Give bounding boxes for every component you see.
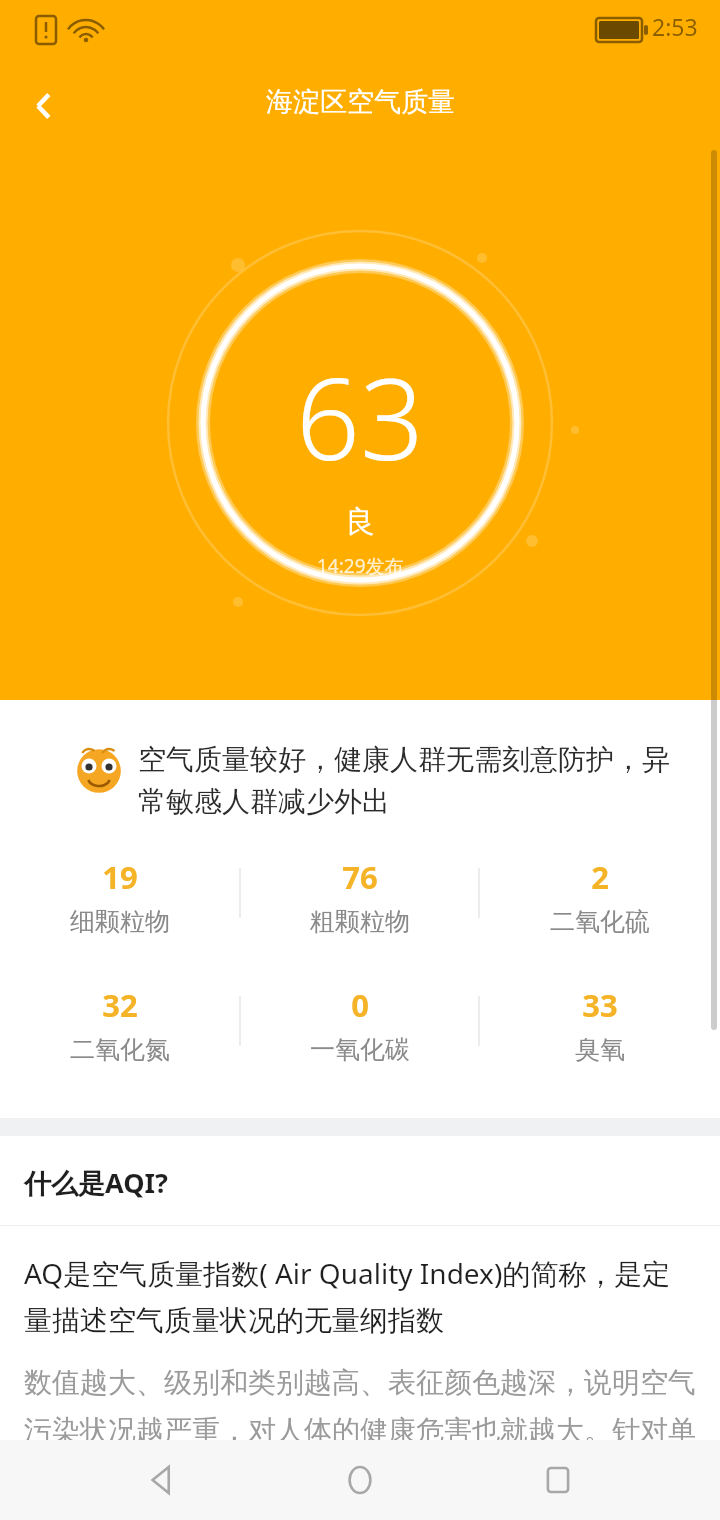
staticText: 2 bbox=[591, 856, 609, 898]
button[interactable]: Back bbox=[14, 76, 74, 136]
button[interactable]: 19 bbox=[0, 856, 240, 956]
staticText: 32 bbox=[102, 984, 138, 1026]
staticText: 臭氧 bbox=[575, 1034, 625, 1065]
staticText: 19 bbox=[102, 856, 138, 898]
button[interactable]: 32 bbox=[0, 984, 240, 1084]
staticText: 0 bbox=[351, 984, 369, 1026]
staticText: 粗颗粒物 bbox=[310, 906, 410, 937]
staticText: 海淀区空气质量 bbox=[266, 85, 455, 119]
button[interactable]: 2 bbox=[480, 856, 720, 956]
staticText: 63 bbox=[296, 340, 424, 493]
staticText: 76 bbox=[342, 856, 378, 898]
staticText: 33 bbox=[582, 984, 618, 1026]
staticText: AQ是空气质量指数( Air Quality Index)的简称，是定量描述空气… bbox=[24, 1254, 696, 1339]
button[interactable]: Recent apps bbox=[523, 1445, 593, 1515]
staticText: 细颗粒物 bbox=[70, 906, 170, 937]
button[interactable]: 33 bbox=[480, 984, 720, 1084]
staticText: 二氧化硫 bbox=[550, 906, 650, 937]
button[interactable]: 0 bbox=[240, 984, 480, 1084]
button[interactable]: 76 bbox=[240, 856, 480, 956]
button[interactable]: Back bbox=[128, 1445, 198, 1515]
staticText: 良 bbox=[345, 503, 375, 541]
staticText: 2:53 bbox=[652, 11, 698, 42]
staticText: 数值越大、级别和类别越高、表征颜色越深，说明空气污染状况越严重，对人体的健康危害… bbox=[24, 1365, 696, 1496]
staticText: 什么是AQI? bbox=[24, 1164, 168, 1201]
button[interactable]: Home bbox=[325, 1445, 395, 1515]
staticText: 一氧化碳 bbox=[310, 1034, 410, 1065]
staticText: 空气质量较好，健康人群无需刻意防护，异常敏感人群减少外出 bbox=[138, 742, 678, 820]
staticText: 14:29发布 bbox=[317, 553, 404, 579]
staticText: 二氧化氮 bbox=[70, 1034, 170, 1065]
